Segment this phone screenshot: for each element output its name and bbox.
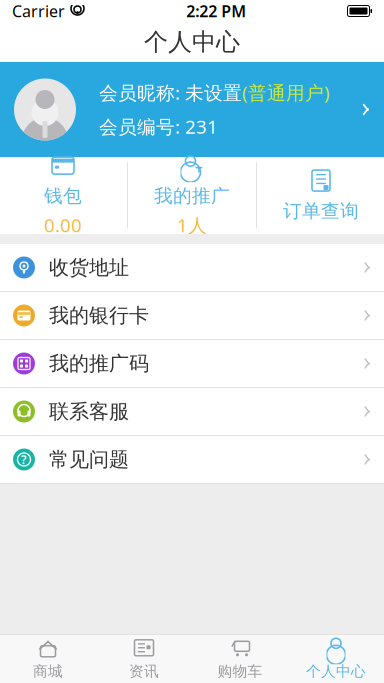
button[interactable]: ? [0,436,384,484]
button[interactable]: 购物车 [192,635,288,682]
staticText: 联系客服 [49,399,129,424]
button[interactable]: 会员昵称: 未设置 [0,62,384,157]
staticText: 我的银行卡 [49,303,149,328]
staticText: 订单查询 [283,199,359,222]
staticText: 2:22 PM [186,0,246,22]
staticText: (普通用户) [242,80,330,105]
staticText: 资讯 [129,662,159,680]
staticText: 收货地址 [49,255,129,280]
staticText: 常见问题 [49,447,129,472]
button[interactable]: 我的银行卡 [0,292,384,340]
staticText: 会员编号: 231 [99,114,218,139]
staticText: 我的推广码 [49,351,149,376]
button[interactable]: 资讯 [96,635,192,682]
staticText: Carrier [12,0,65,22]
button[interactable]: 我的推广码 [0,340,384,388]
button[interactable]: 钱包 [0,157,127,234]
button[interactable]: 订单查询 [257,157,384,234]
button[interactable]: 个人中心 [288,635,384,682]
button[interactable]: 收货地址 [0,244,384,292]
staticText: 我的推广 [154,185,230,207]
staticText: 购物车 [217,662,262,680]
staticText: 个人中心 [144,27,240,57]
staticText: 钱包 [44,185,82,207]
staticText: 0.00 [44,213,82,237]
button[interactable]: 我的推广 [128,157,256,234]
button[interactable]: 联系客服 [0,388,384,436]
staticText: 个人中心 [306,662,366,680]
staticText: ? [21,451,27,467]
staticText: 商城 [33,662,63,680]
staticText: 会员昵称: 未设置 [99,80,242,105]
button[interactable]: 商城 [0,635,96,682]
staticText: 1人 [177,213,207,237]
